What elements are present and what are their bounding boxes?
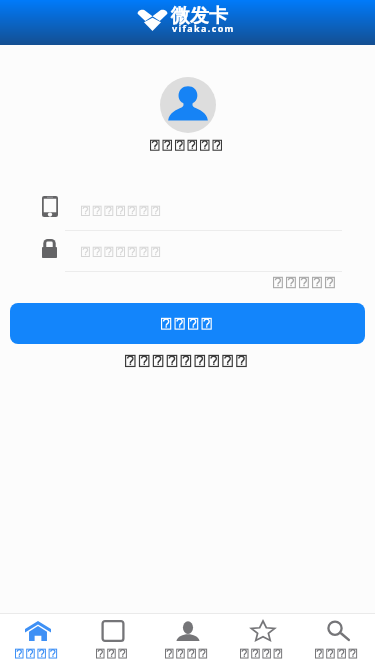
button[interactable]: Home — [0, 614, 75, 667]
button[interactable] — [119, 349, 256, 373]
button[interactable] — [10, 303, 365, 344]
button[interactable] — [267, 271, 346, 295]
staticText: 微发卡 — [171, 4, 228, 28]
staticText: vifaka.com — [172, 22, 235, 34]
button[interactable]: Favorites — [225, 614, 300, 667]
button[interactable]: Search — [300, 614, 375, 667]
button[interactable]: Profile — [150, 614, 225, 667]
button[interactable]: Cards — [75, 614, 150, 667]
